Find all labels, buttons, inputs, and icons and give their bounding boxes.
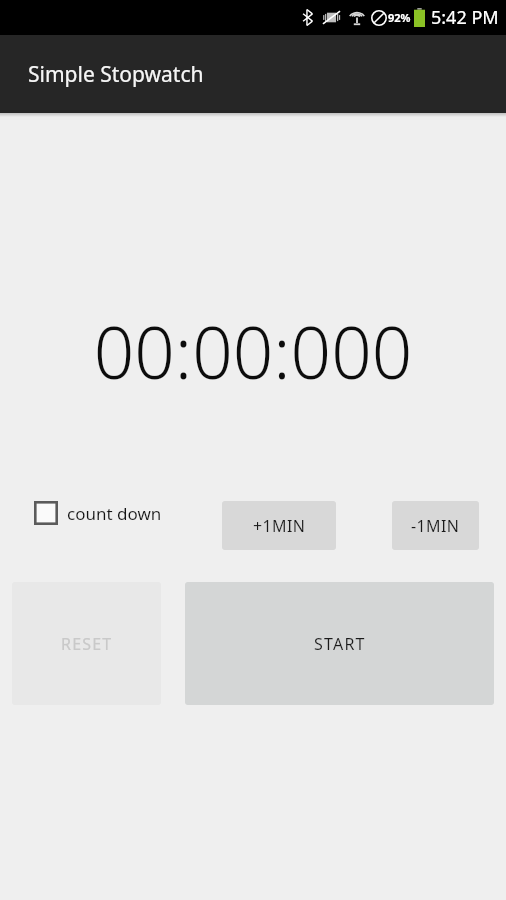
staticText: +1MIN bbox=[253, 515, 306, 537]
staticText: -1MIN bbox=[411, 515, 460, 537]
button[interactable]: START bbox=[185, 582, 494, 705]
staticText: START bbox=[314, 633, 366, 655]
staticText: count down bbox=[67, 502, 162, 525]
button[interactable]: -1MIN bbox=[392, 501, 479, 550]
button[interactable]: count down bbox=[30, 495, 166, 531]
button[interactable]: +1MIN bbox=[222, 501, 336, 550]
staticText: 00:00:000 bbox=[0, 303, 506, 400]
staticText: RESET bbox=[61, 633, 113, 655]
staticText: 92% bbox=[388, 10, 411, 25]
staticText: 5:42 PM bbox=[431, 5, 499, 30]
staticText: Simple Stopwatch bbox=[28, 60, 204, 89]
